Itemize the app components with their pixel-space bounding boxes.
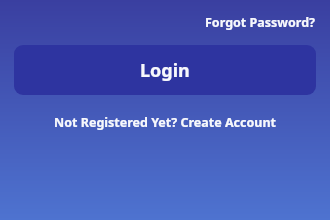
button[interactable]: Forgot Password? bbox=[203, 13, 318, 32]
button[interactable]: Not Registered Yet? Create Account bbox=[50, 112, 280, 133]
staticText: Not Registered Yet? Create Account bbox=[54, 114, 276, 131]
button[interactable]: Login bbox=[14, 45, 316, 95]
staticText: Login bbox=[140, 58, 190, 83]
staticText: Forgot Password? bbox=[205, 14, 316, 31]
